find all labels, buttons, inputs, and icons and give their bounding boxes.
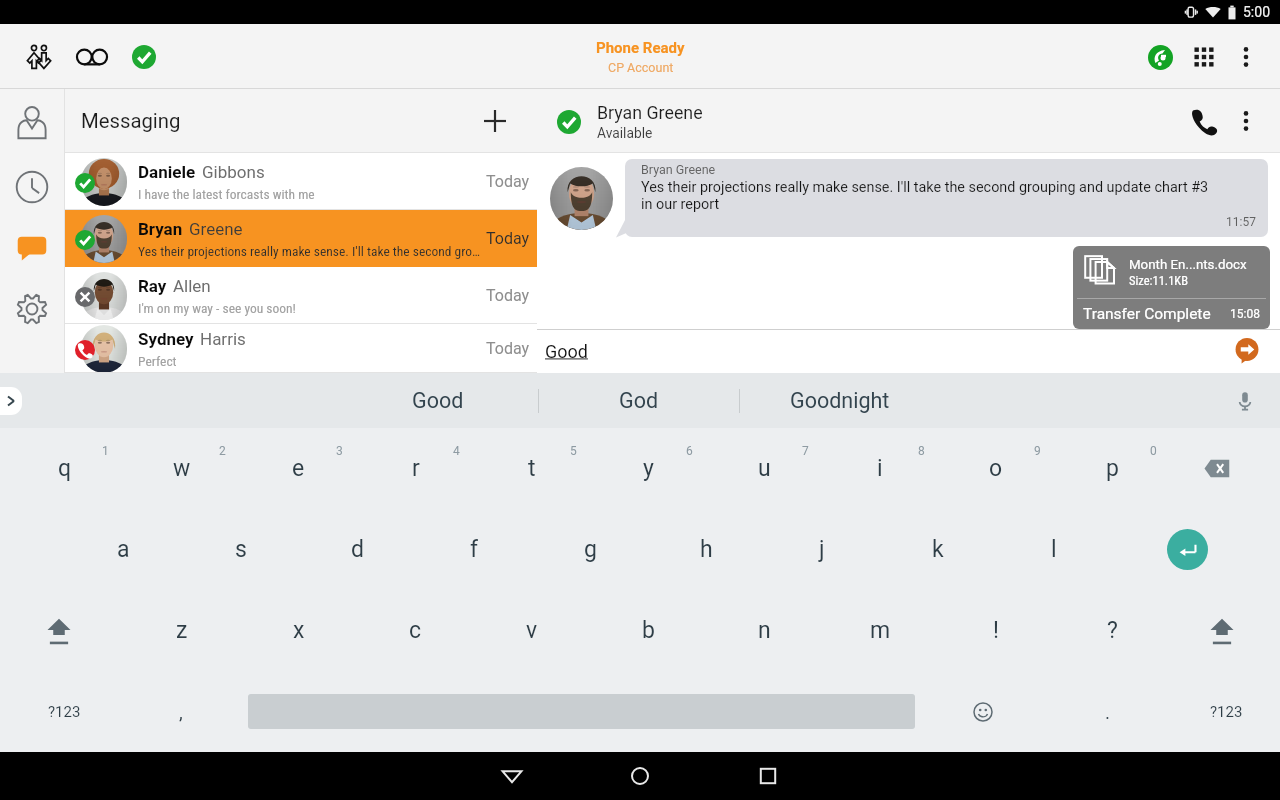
button[interactable]: Call forwarding bbox=[1138, 35, 1182, 79]
button[interactable]: Transfer call bbox=[16, 33, 64, 81]
staticText: i bbox=[877, 455, 883, 482]
button[interactable]: Bryan bbox=[65, 210, 537, 267]
button[interactable]: Sydney bbox=[65, 324, 537, 373]
button[interactable]: 1 bbox=[0, 428, 117, 509]
staticText: 1 bbox=[102, 444, 109, 458]
staticText: I'm on my way - see you soon! bbox=[138, 300, 481, 316]
button[interactable]: Dialpad bbox=[1182, 35, 1226, 79]
button[interactable]: Settings bbox=[8, 285, 56, 333]
staticText: 7 bbox=[802, 444, 809, 458]
staticText: Month En...nts.docx bbox=[1129, 257, 1247, 273]
button[interactable]: Recents bbox=[728, 752, 808, 800]
button[interactable]: v bbox=[468, 590, 584, 671]
staticText: p bbox=[1106, 455, 1119, 482]
staticText: in our report bbox=[641, 196, 720, 213]
button[interactable]: ?123 bbox=[1161, 671, 1280, 752]
button[interactable]: , bbox=[118, 671, 236, 752]
button[interactable]: x bbox=[234, 590, 351, 671]
button[interactable]: c bbox=[351, 590, 468, 671]
button[interactable]: Messaging bbox=[8, 223, 56, 271]
staticText: 8 bbox=[918, 444, 925, 458]
staticText: n bbox=[758, 617, 771, 644]
button[interactable]: b bbox=[584, 590, 700, 671]
button[interactable]: New message bbox=[475, 101, 515, 141]
button[interactable]: God bbox=[539, 373, 739, 428]
button[interactable]: f bbox=[410, 509, 526, 590]
button[interactable]: Ray bbox=[65, 267, 537, 324]
button[interactable]: 8 bbox=[816, 428, 932, 509]
staticText: o bbox=[989, 455, 1003, 482]
button[interactable]: Back bbox=[472, 752, 552, 800]
staticText: Ray bbox=[138, 276, 167, 296]
button[interactable]: ?123 bbox=[0, 671, 118, 752]
staticText: Today bbox=[486, 172, 530, 191]
button[interactable]: Presence available bbox=[120, 33, 168, 81]
staticText: x bbox=[293, 617, 305, 644]
button[interactable]: Expand suggestions bbox=[0, 387, 22, 415]
button[interactable]: Voice input bbox=[1230, 386, 1260, 416]
button[interactable]: z bbox=[117, 590, 234, 671]
staticText: 3 bbox=[336, 444, 343, 458]
button[interactable]: Daniele bbox=[65, 153, 537, 210]
button[interactable]: 7 bbox=[700, 428, 816, 509]
button[interactable]: 0 bbox=[1048, 428, 1164, 509]
button[interactable]: Good bbox=[338, 373, 538, 428]
button[interactable]: h bbox=[642, 509, 758, 590]
button[interactable]: Enter bbox=[1164, 509, 1280, 590]
staticText: 0 bbox=[1150, 444, 1157, 458]
staticText: Greene bbox=[189, 219, 243, 239]
staticText: 5:00 bbox=[1243, 4, 1270, 20]
button[interactable]: a bbox=[59, 509, 176, 590]
button[interactable]: ? bbox=[1048, 590, 1164, 671]
staticText: b bbox=[642, 617, 655, 644]
staticText: God bbox=[619, 388, 659, 413]
staticText: ?123 bbox=[1210, 703, 1243, 721]
button[interactable]: Home bbox=[600, 752, 680, 800]
staticText: . bbox=[1105, 701, 1111, 723]
staticText: Perfect bbox=[138, 353, 481, 369]
button[interactable]: More options bbox=[1226, 101, 1266, 141]
staticText: Good bbox=[545, 341, 588, 362]
staticText: a bbox=[117, 536, 130, 563]
staticText: Messaging bbox=[81, 109, 181, 133]
button[interactable]: 5 bbox=[468, 428, 584, 509]
button[interactable]: Backspace bbox=[1164, 428, 1280, 509]
button[interactable]: m bbox=[816, 590, 932, 671]
staticText: Harris bbox=[200, 329, 246, 349]
staticText: s bbox=[235, 536, 247, 563]
button[interactable]: 3 bbox=[234, 428, 351, 509]
button[interactable]: Contacts bbox=[4, 95, 60, 151]
button[interactable]: Send bbox=[1231, 335, 1263, 367]
button[interactable]: Call bbox=[1182, 99, 1226, 143]
button[interactable]: Space bbox=[236, 671, 923, 752]
button[interactable]: l bbox=[990, 509, 1106, 590]
button[interactable]: ! bbox=[932, 590, 1048, 671]
staticText: I have the latest forcasts with me bbox=[138, 186, 481, 202]
staticText: l bbox=[1051, 536, 1057, 563]
button[interactable]: d bbox=[293, 509, 410, 590]
button[interactable]: Emoji bbox=[923, 671, 1042, 752]
button[interactable]: s bbox=[176, 509, 293, 590]
button[interactable]: 6 bbox=[584, 428, 700, 509]
button[interactable]: 9 bbox=[932, 428, 1048, 509]
staticText: Size:11.1KB bbox=[1129, 273, 1188, 288]
button[interactable]: n bbox=[700, 590, 816, 671]
staticText: Goodnight bbox=[790, 388, 890, 413]
staticText: 5 bbox=[570, 444, 577, 458]
button[interactable]: Voicemail bbox=[68, 33, 116, 81]
staticText: Allen bbox=[173, 276, 211, 296]
button[interactable]: Goodnight bbox=[740, 373, 940, 428]
button[interactable]: 4 bbox=[351, 428, 468, 509]
button[interactable]: Shift bbox=[0, 590, 117, 671]
staticText: Phone Ready bbox=[596, 39, 685, 57]
button[interactable]: Recent calls bbox=[8, 163, 56, 211]
staticText: Transfer Complete bbox=[1083, 305, 1211, 323]
button[interactable]: j bbox=[758, 509, 874, 590]
staticText: t bbox=[528, 455, 536, 482]
button[interactable]: More options bbox=[1226, 37, 1266, 77]
button[interactable]: 2 bbox=[117, 428, 234, 509]
button[interactable]: k bbox=[874, 509, 990, 590]
button[interactable]: Shift bbox=[1164, 590, 1280, 671]
button[interactable]: g bbox=[526, 509, 642, 590]
